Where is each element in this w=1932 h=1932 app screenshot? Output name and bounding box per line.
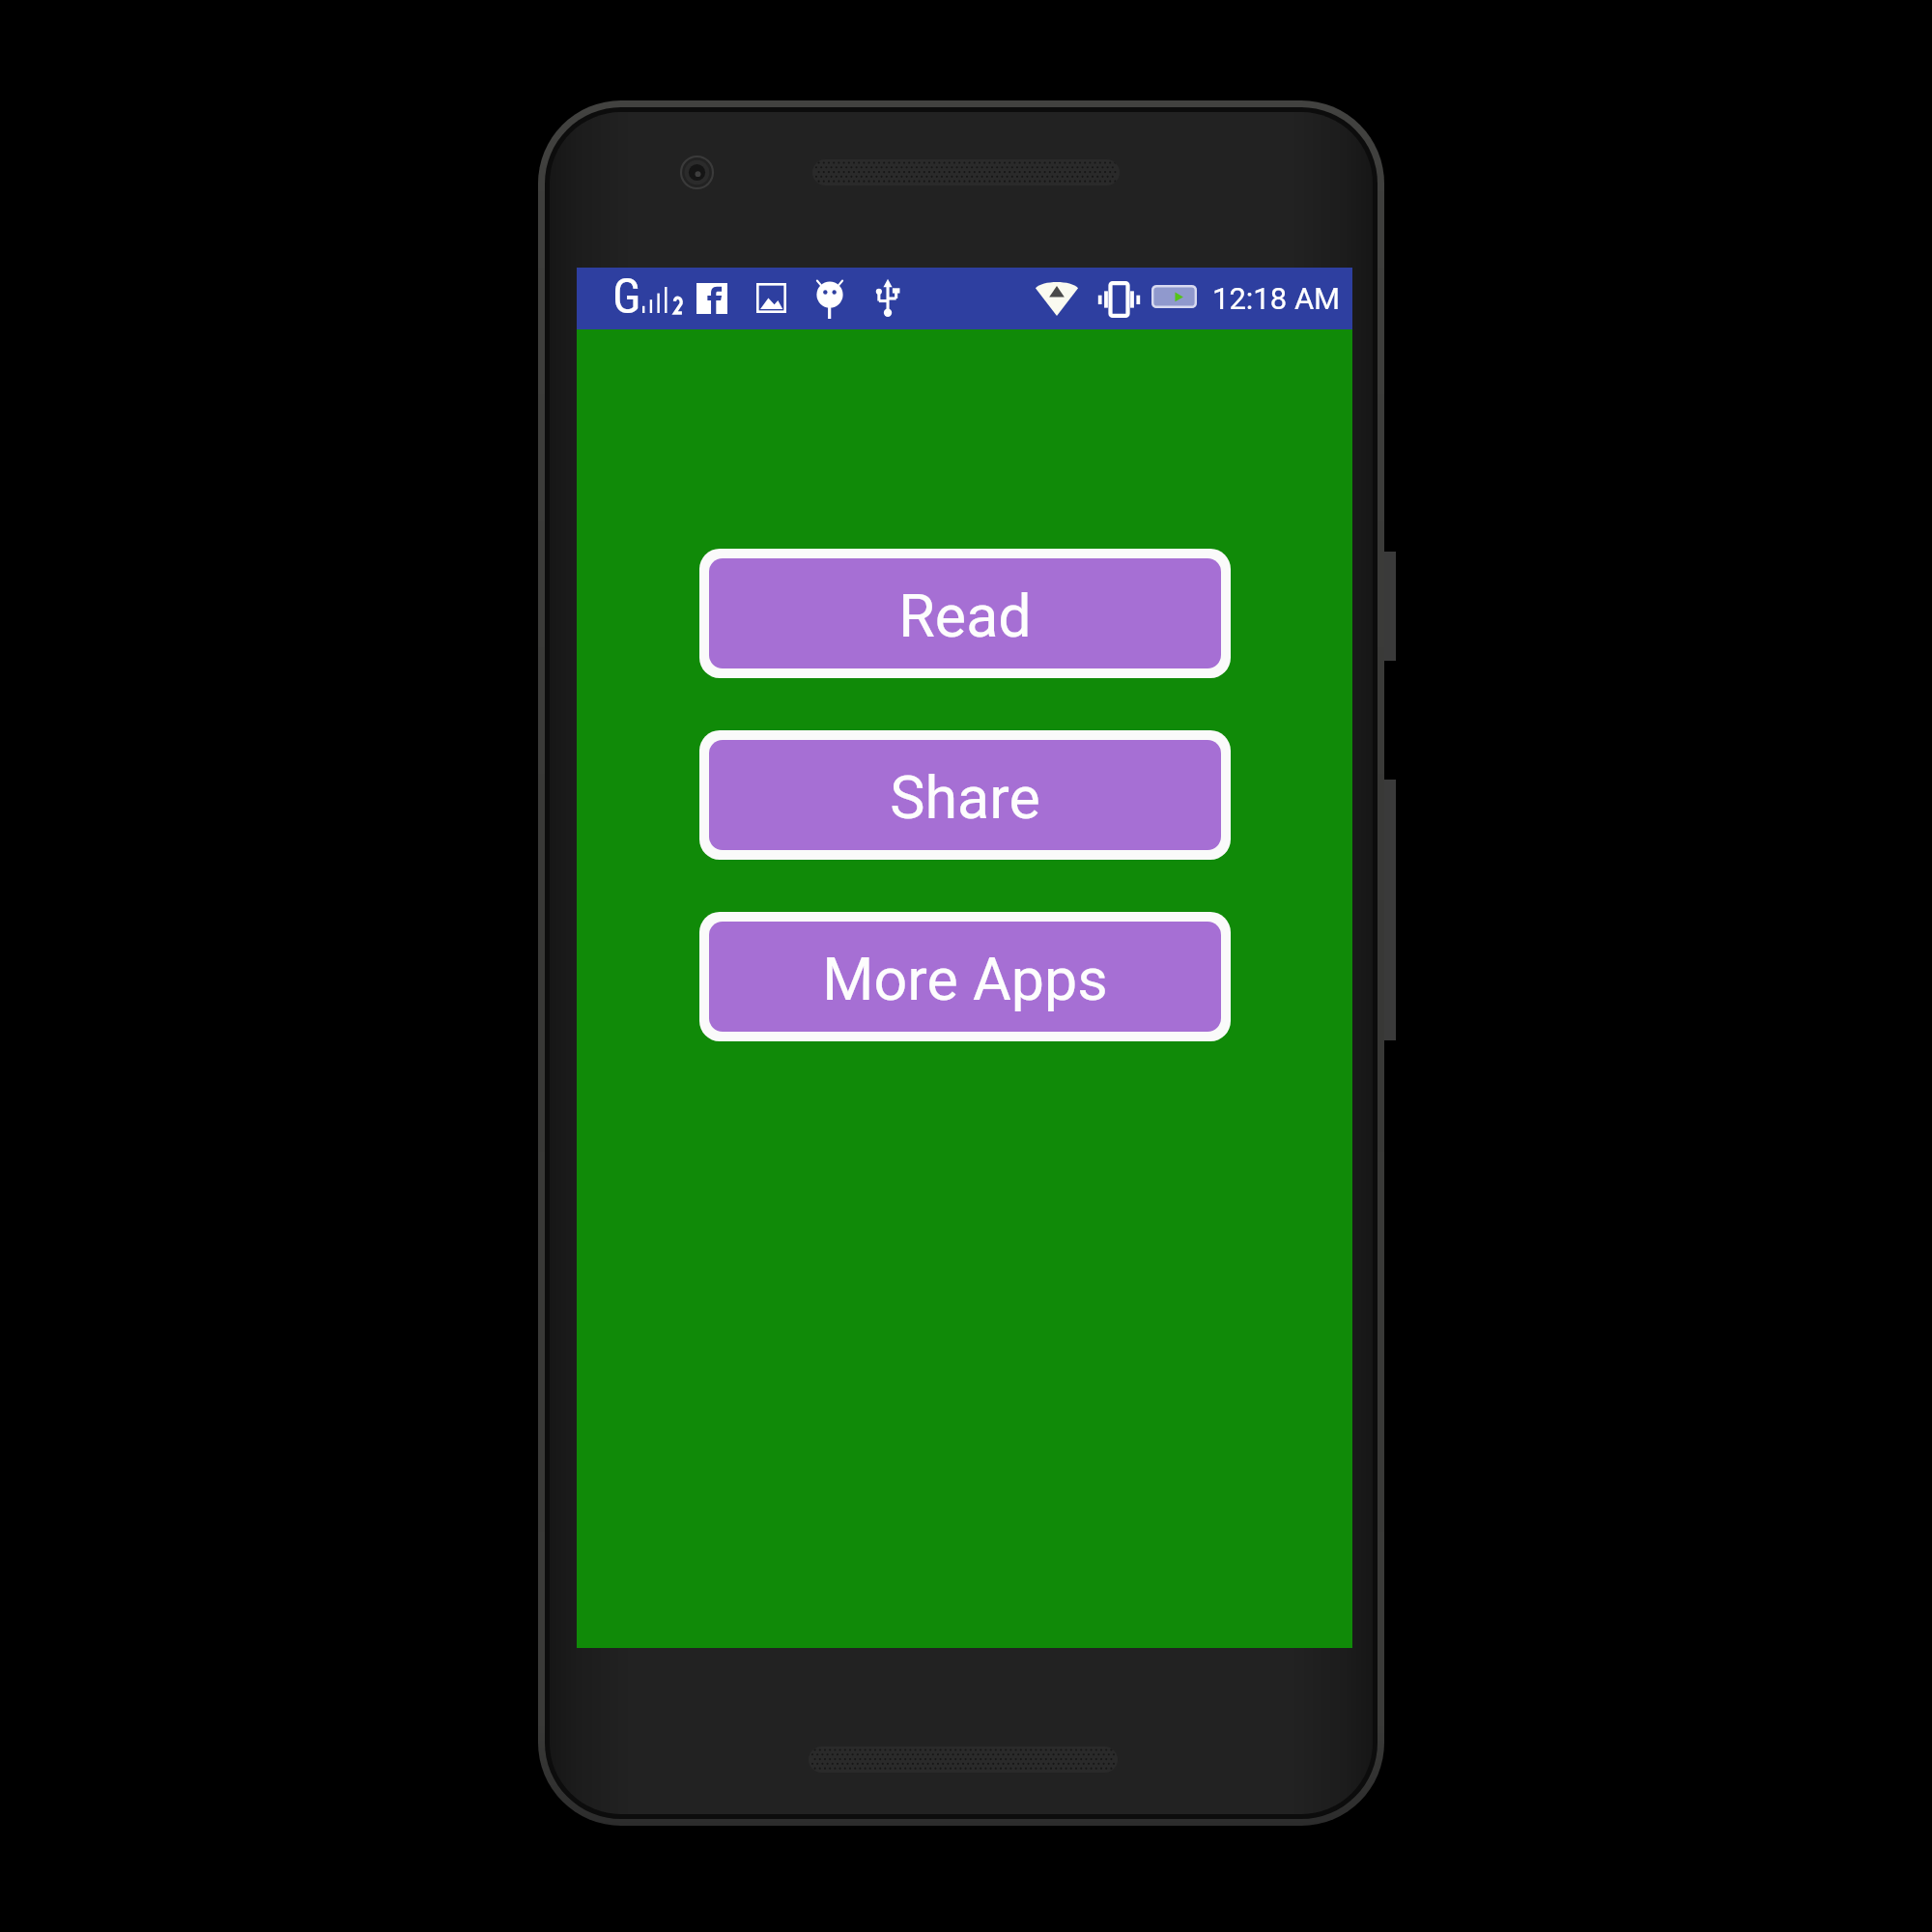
staticText: Share xyxy=(890,763,1040,832)
staticText: G xyxy=(612,269,641,326)
button[interactable]: More Apps xyxy=(699,912,1231,1041)
other: Wi-Fi connected xyxy=(1035,280,1079,316)
button[interactable]: Read xyxy=(699,549,1231,678)
button[interactable]: Share xyxy=(699,730,1231,860)
staticText: 12:18 AM xyxy=(1212,281,1341,316)
other: Facebook notification xyxy=(696,283,727,314)
other: USB connected xyxy=(874,278,900,319)
other: Battery charging xyxy=(1151,285,1197,308)
other: Ringer set to vibrate xyxy=(1097,282,1141,317)
other: Screenshot captured xyxy=(756,283,786,313)
other: Mobile signal strength xyxy=(642,278,685,317)
staticText: Read xyxy=(898,582,1032,650)
other: Developer options xyxy=(814,278,845,319)
staticText: More Apps xyxy=(822,945,1108,1013)
